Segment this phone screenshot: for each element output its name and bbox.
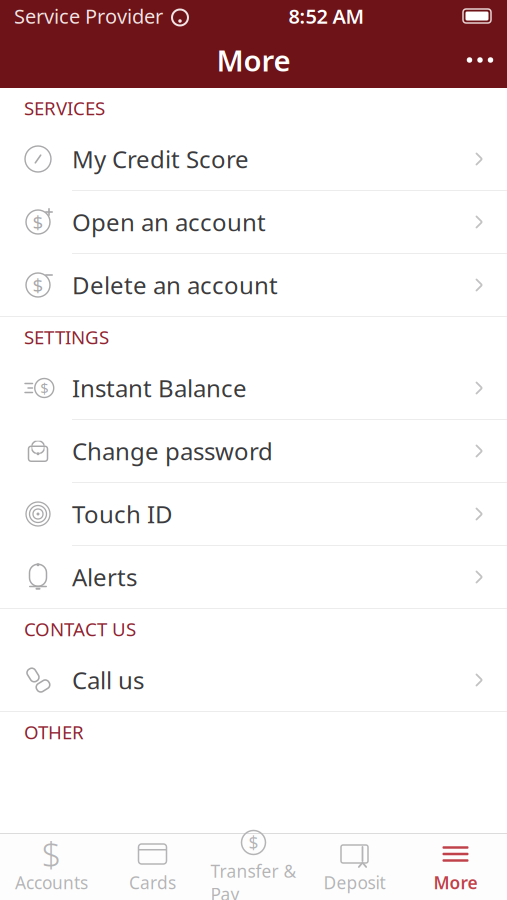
button[interactable]: Deposit (304, 835, 405, 899)
staticText: Call us (72, 664, 144, 696)
button[interactable]: Alerts (0, 546, 507, 608)
staticText: Service Provider (14, 3, 163, 29)
button[interactable]: My Credit Score (0, 128, 507, 190)
button[interactable]: Touch ID (0, 483, 507, 545)
button[interactable]: Cards (102, 835, 203, 899)
staticText: $ (248, 831, 258, 854)
staticText: Deposit (323, 871, 385, 894)
staticText: More (433, 871, 477, 894)
button[interactable]: $ (0, 191, 507, 253)
staticText: My Credit Score (72, 143, 249, 175)
button[interactable]: More (405, 835, 506, 899)
staticText: 8:52 AM (288, 3, 364, 29)
button[interactable]: More options (453, 38, 507, 82)
staticText: Cards (129, 871, 176, 894)
staticText: Open an account (72, 206, 266, 238)
staticText: More (216, 40, 290, 79)
staticText: $ (32, 210, 43, 234)
button[interactable]: $ (0, 357, 507, 419)
staticText: Alerts (72, 561, 137, 593)
button[interactable]: Call us (0, 649, 507, 711)
staticText: Change password (72, 435, 273, 467)
staticText: Accounts (15, 871, 88, 894)
staticText: Delete an account (72, 269, 278, 301)
staticText: $ (32, 273, 43, 297)
staticText: CONTACT US (24, 617, 136, 641)
button[interactable]: $ (203, 835, 304, 899)
staticText: Transfer & Pay (210, 859, 296, 900)
staticText: $ (40, 378, 48, 398)
staticText: $ (41, 831, 61, 877)
staticText: OTHER (24, 720, 84, 744)
button[interactable]: $ (0, 254, 507, 316)
staticText: Instant Balance (72, 372, 247, 404)
staticText: Touch ID (72, 498, 173, 530)
staticText: SETTINGS (24, 325, 109, 349)
staticText: SERVICES (24, 96, 105, 120)
button[interactable]: $ (1, 835, 102, 899)
button[interactable]: Change password (0, 420, 507, 482)
